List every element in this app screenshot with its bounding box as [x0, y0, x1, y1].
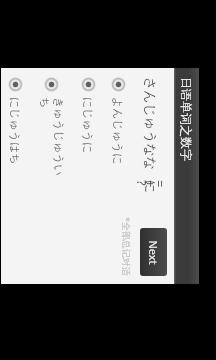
staticText: きゅうじゅういち: [38, 97, 66, 180]
button[interactable]: にじゅうに: [79, 77, 98, 180]
staticText: よんじゅうに: [111, 97, 125, 165]
staticText: Next: [146, 240, 161, 265]
button[interactable]: にじゅうはち: [6, 77, 25, 180]
staticText: *全部总记对适: [121, 217, 133, 276]
staticText: にじゅうはち: [8, 97, 22, 165]
button[interactable]: きゅうじゅういち: [36, 77, 68, 180]
button[interactable]: Next question: [140, 228, 167, 276]
staticText: さんじゅうなな: [143, 77, 159, 171]
staticText: にじゅうに: [81, 97, 95, 154]
staticText: 日语单词之数字: [179, 77, 194, 161]
button[interactable]: よんじゅうに: [109, 77, 128, 180]
